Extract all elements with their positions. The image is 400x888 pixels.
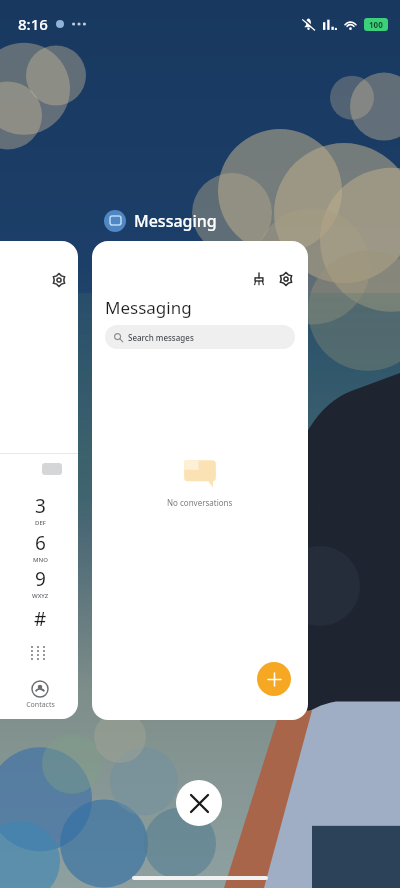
button[interactable]: Settings [274, 267, 298, 291]
staticText: 3 [35, 493, 46, 519]
button[interactable]: New conversation [257, 662, 291, 696]
button[interactable]: Messaging [102, 208, 219, 234]
button[interactable]: Backspace [42, 463, 62, 475]
staticText: # [34, 606, 47, 632]
staticText: 100 [369, 19, 383, 30]
staticText: 9 [35, 566, 46, 592]
button[interactable]: 3 [10, 493, 70, 527]
staticText: WXYZ [32, 592, 49, 600]
button[interactable]: Clear all [176, 780, 222, 826]
staticText: Search messages [128, 332, 194, 343]
staticText: Messaging [105, 296, 192, 319]
staticText: Messaging [134, 210, 217, 232]
button[interactable]: Settings [0, 241, 78, 719]
button[interactable]: Search messages [105, 325, 295, 349]
button[interactable]: 6 [10, 530, 70, 564]
staticText: DEF [35, 519, 46, 527]
staticText: 6 [35, 530, 46, 556]
button[interactable]: 9 [10, 566, 70, 600]
staticText: No conversations [167, 497, 233, 508]
button[interactable]: Settings [48, 269, 70, 291]
button[interactable]: Contacts [12, 681, 68, 710]
button[interactable]: Clean up [92, 241, 308, 720]
button[interactable]: # [10, 606, 70, 632]
staticText: Contacts [26, 700, 55, 710]
button[interactable]: Dialpad [26, 641, 50, 665]
button[interactable]: Clean up [247, 267, 271, 291]
staticText: 8:16 [18, 14, 48, 34]
staticText: MNO [33, 556, 48, 564]
